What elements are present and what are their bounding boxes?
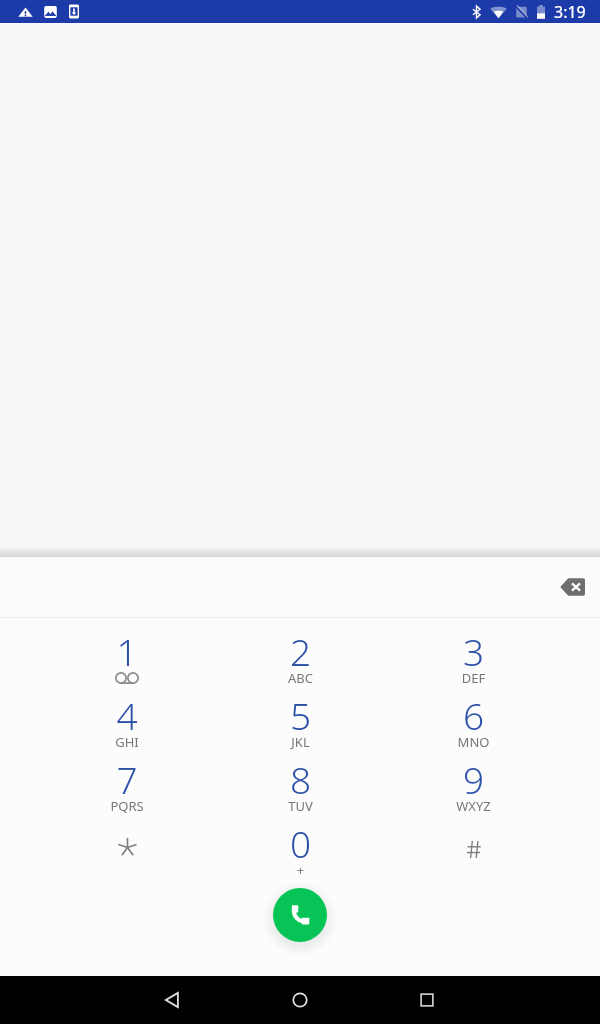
button[interactable]: 5 (214, 682, 387, 746)
staticText: 5 (214, 690, 387, 740)
button[interactable]: 6 (387, 682, 560, 746)
staticText: 3 (387, 626, 560, 676)
button[interactable]: 2 (214, 618, 387, 682)
staticText: 0 (214, 818, 387, 868)
staticText: JKL (214, 733, 387, 751)
button[interactable]: 9 (387, 746, 560, 810)
staticText: 1 (40, 626, 214, 676)
staticText: GHI (40, 733, 214, 751)
button[interactable]: 1 (40, 618, 214, 682)
button[interactable] (40, 810, 214, 874)
staticText: ABC (214, 669, 387, 687)
staticText: 7 (40, 754, 214, 804)
button[interactable]: Back (150, 978, 194, 1022)
staticText: 2 (214, 626, 387, 676)
button[interactable]: Backspace (548, 563, 596, 611)
button[interactable]: 4 (40, 682, 214, 746)
button[interactable]: Home (278, 978, 322, 1022)
button[interactable] (387, 810, 560, 874)
staticText: 8 (214, 754, 387, 804)
button[interactable]: Recents (405, 978, 449, 1022)
button[interactable]: Call (273, 888, 327, 942)
staticText: TUV (214, 797, 387, 815)
button[interactable]: 0 (214, 810, 387, 874)
staticText: 6 (387, 690, 560, 740)
staticText: 3:19 (554, 1, 586, 23)
staticText: WXYZ (387, 797, 560, 815)
staticText: MNO (387, 733, 560, 751)
button[interactable]: 7 (40, 746, 214, 810)
button[interactable]: 3 (387, 618, 560, 682)
staticText: + (214, 861, 387, 879)
staticText: DEF (387, 669, 560, 687)
staticText: 9 (387, 754, 560, 804)
button[interactable]: 8 (214, 746, 387, 810)
staticText: 4 (40, 690, 214, 740)
staticText: PQRS (40, 797, 214, 815)
